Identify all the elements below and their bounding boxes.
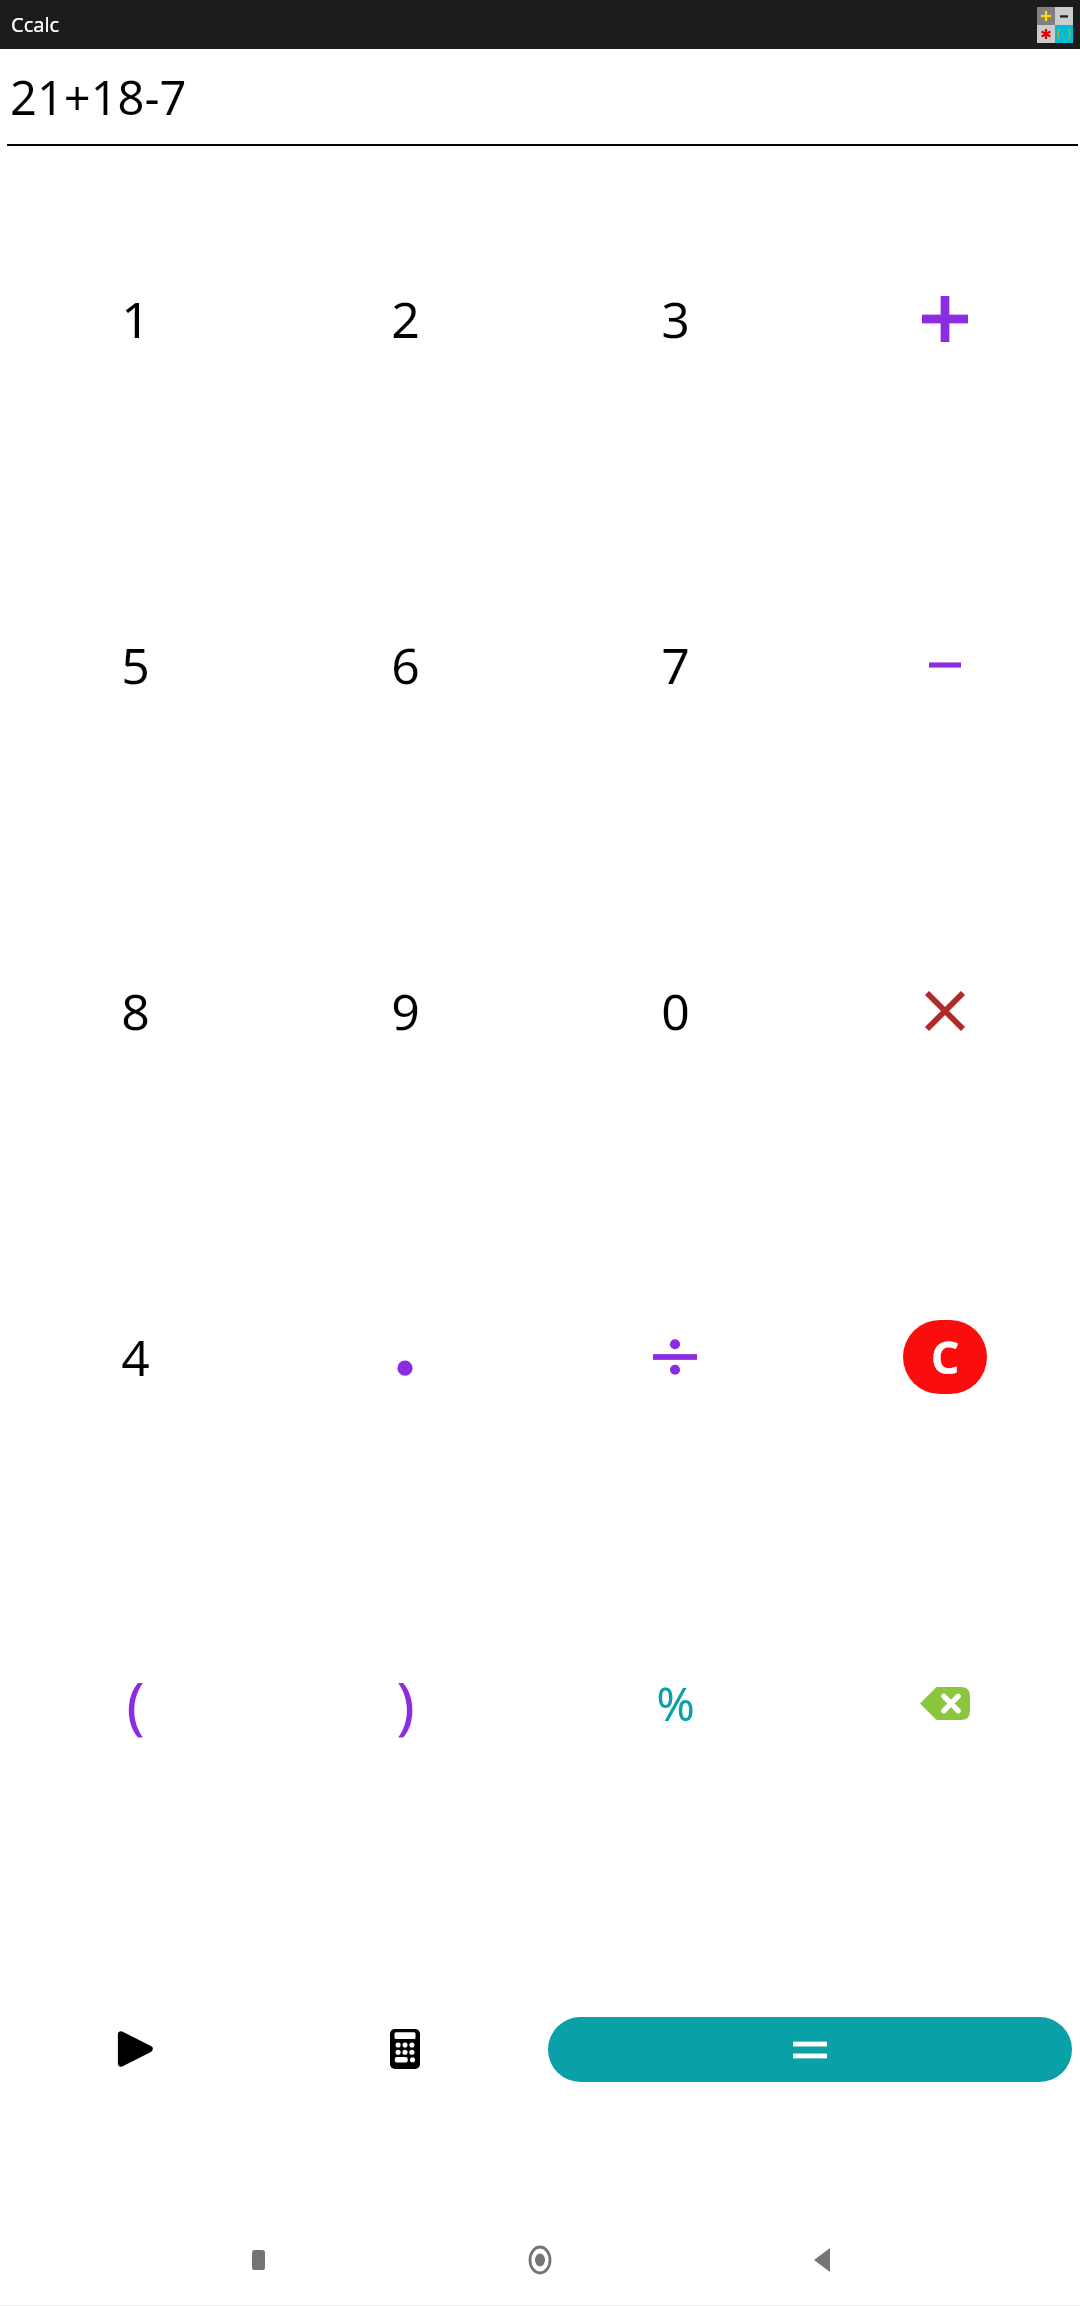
staticText: 4	[121, 1323, 150, 1391]
button[interactable]: 4	[0, 1184, 270, 1530]
button[interactable]: Play	[0, 1876, 270, 2222]
staticText: 21+18-7	[10, 65, 187, 129]
button[interactable]: Calculator	[270, 1876, 540, 2222]
staticText: 7	[661, 631, 690, 699]
button[interactable]: App icon	[1037, 7, 1073, 43]
button[interactable]: 7	[540, 492, 810, 838]
button[interactable]: )	[270, 1530, 540, 1876]
staticText: 8	[121, 977, 150, 1045]
button[interactable]: 3	[540, 146, 810, 492]
button[interactable]: Plus	[810, 146, 1080, 492]
button[interactable]: 6	[270, 492, 540, 838]
staticText: 3	[661, 285, 690, 353]
button[interactable]: Back	[798, 2236, 846, 2284]
button[interactable]: 8	[0, 838, 270, 1184]
button[interactable]: Backspace	[810, 1530, 1080, 1876]
staticText: %	[656, 1672, 695, 1735]
staticText: )	[396, 1661, 415, 1745]
staticText: 0	[661, 977, 690, 1045]
button[interactable]: 9	[270, 838, 540, 1184]
button[interactable]: 1	[0, 146, 270, 492]
staticText: 9	[391, 977, 420, 1045]
staticText: (	[126, 1661, 145, 1745]
staticText: Ccalc	[11, 11, 60, 38]
button[interactable]: Decimal point	[270, 1184, 540, 1530]
staticText: 5	[121, 631, 150, 699]
staticText: 2	[391, 285, 420, 353]
button[interactable]: Minus	[810, 492, 1080, 838]
button[interactable]: %	[540, 1530, 810, 1876]
button[interactable]: 2	[270, 146, 540, 492]
button[interactable]: Divide	[540, 1184, 810, 1530]
button[interactable]: C	[903, 1320, 987, 1394]
button[interactable]: 0	[540, 838, 810, 1184]
button[interactable]: (	[0, 1530, 270, 1876]
staticText: C	[931, 1327, 960, 1387]
button[interactable]: Equals	[548, 2017, 1072, 2082]
button[interactable]: Recents	[234, 2236, 282, 2284]
staticText: 6	[391, 631, 420, 699]
staticText: 1	[121, 285, 150, 353]
button[interactable]: 5	[0, 492, 270, 838]
button[interactable]: Multiply	[810, 838, 1080, 1184]
button[interactable]: Home	[516, 2236, 564, 2284]
